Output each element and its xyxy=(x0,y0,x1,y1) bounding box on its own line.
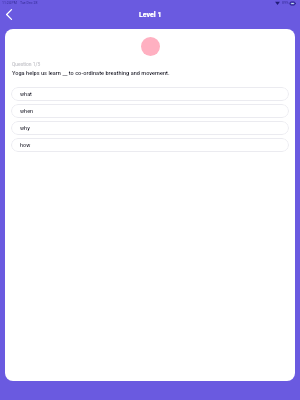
button[interactable]: Back xyxy=(1,6,17,22)
staticText: Yoga helps us learn __ to co-ordinate br… xyxy=(12,70,170,77)
button[interactable]: when xyxy=(11,104,289,118)
staticText: Tue Dec 28 xyxy=(20,1,38,5)
staticText: 89% xyxy=(282,1,289,5)
button[interactable]: how xyxy=(11,138,289,152)
button[interactable]: why xyxy=(11,121,289,135)
staticText: how xyxy=(20,142,31,148)
staticText: when xyxy=(20,108,34,114)
staticText: Level 1 xyxy=(139,11,162,19)
staticText: why xyxy=(20,125,30,131)
button[interactable]: what xyxy=(11,87,289,101)
staticText: Question 1/5 xyxy=(12,61,41,67)
staticText: what xyxy=(20,91,32,97)
staticText: 11:24 PM xyxy=(2,1,17,5)
